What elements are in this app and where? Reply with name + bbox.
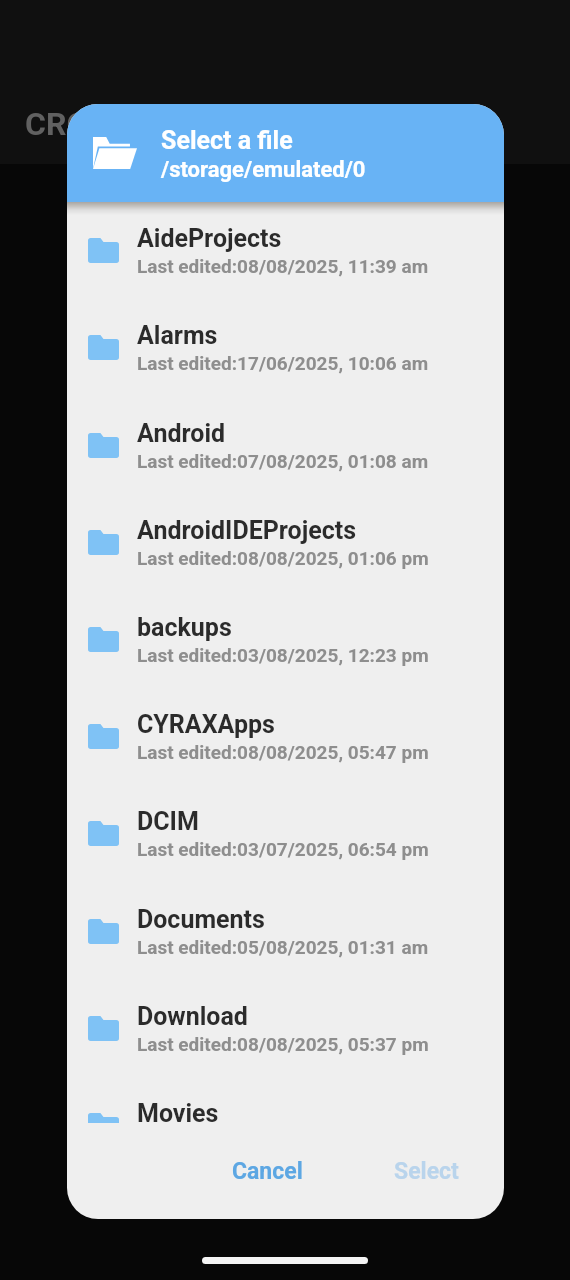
other: Current folder — [93, 137, 137, 169]
button[interactable]: backups — [67, 591, 504, 688]
staticText: AndroidIDEProjects — [137, 516, 357, 545]
button[interactable]: Select — [378, 1143, 474, 1197]
button[interactable]: Download — [67, 980, 504, 1077]
button[interactable]: Movies — [67, 1077, 504, 1123]
staticText: /storage/emulated/0 — [161, 157, 366, 183]
staticText: Last edited:07/08/2025, 01:08 am — [137, 450, 429, 472]
button[interactable]: Cancel — [214, 1143, 320, 1197]
staticText: Select a file — [161, 126, 293, 155]
staticText: DCIM — [137, 807, 199, 836]
staticText: CYRAXApps — [137, 710, 275, 739]
staticText: Last edited:03/08/2025, 12:23 pm — [137, 644, 429, 666]
staticText: Last edited:08/08/2025, 11:39 am — [137, 255, 429, 277]
button[interactable]: AndroidIDEProjects — [67, 494, 504, 591]
button[interactable]: Documents — [67, 883, 504, 980]
button[interactable]: Alarms — [67, 299, 504, 396]
button[interactable]: CYRAXApps — [67, 688, 504, 785]
staticText: Movies — [137, 1099, 219, 1123]
button[interactable]: Android — [67, 397, 504, 494]
staticText: Select — [394, 1158, 459, 1185]
staticText: Last edited:03/07/2025, 06:54 pm — [137, 838, 429, 860]
staticText: AideProjects — [137, 224, 282, 253]
staticText: Last edited:08/08/2025, 05:37 pm — [137, 1033, 429, 1055]
staticText: Last edited:08/08/2025, 05:47 pm — [137, 741, 429, 763]
staticText: Android — [137, 419, 226, 448]
staticText: Download — [137, 1002, 248, 1031]
staticText: Documents — [137, 905, 265, 934]
staticText: Last edited:05/08/2025, 01:31 am — [137, 936, 429, 958]
staticText: Cancel — [232, 1158, 303, 1185]
staticText: backups — [137, 613, 232, 642]
staticText: Last edited:17/06/2025, 10:06 am — [137, 352, 429, 374]
staticText: CROSS — [25, 105, 128, 143]
button[interactable]: AideProjects — [67, 202, 504, 299]
staticText: Last edited:08/08/2025, 01:06 pm — [137, 547, 429, 569]
staticText: Alarms — [137, 321, 218, 350]
button[interactable]: DCIM — [67, 785, 504, 882]
